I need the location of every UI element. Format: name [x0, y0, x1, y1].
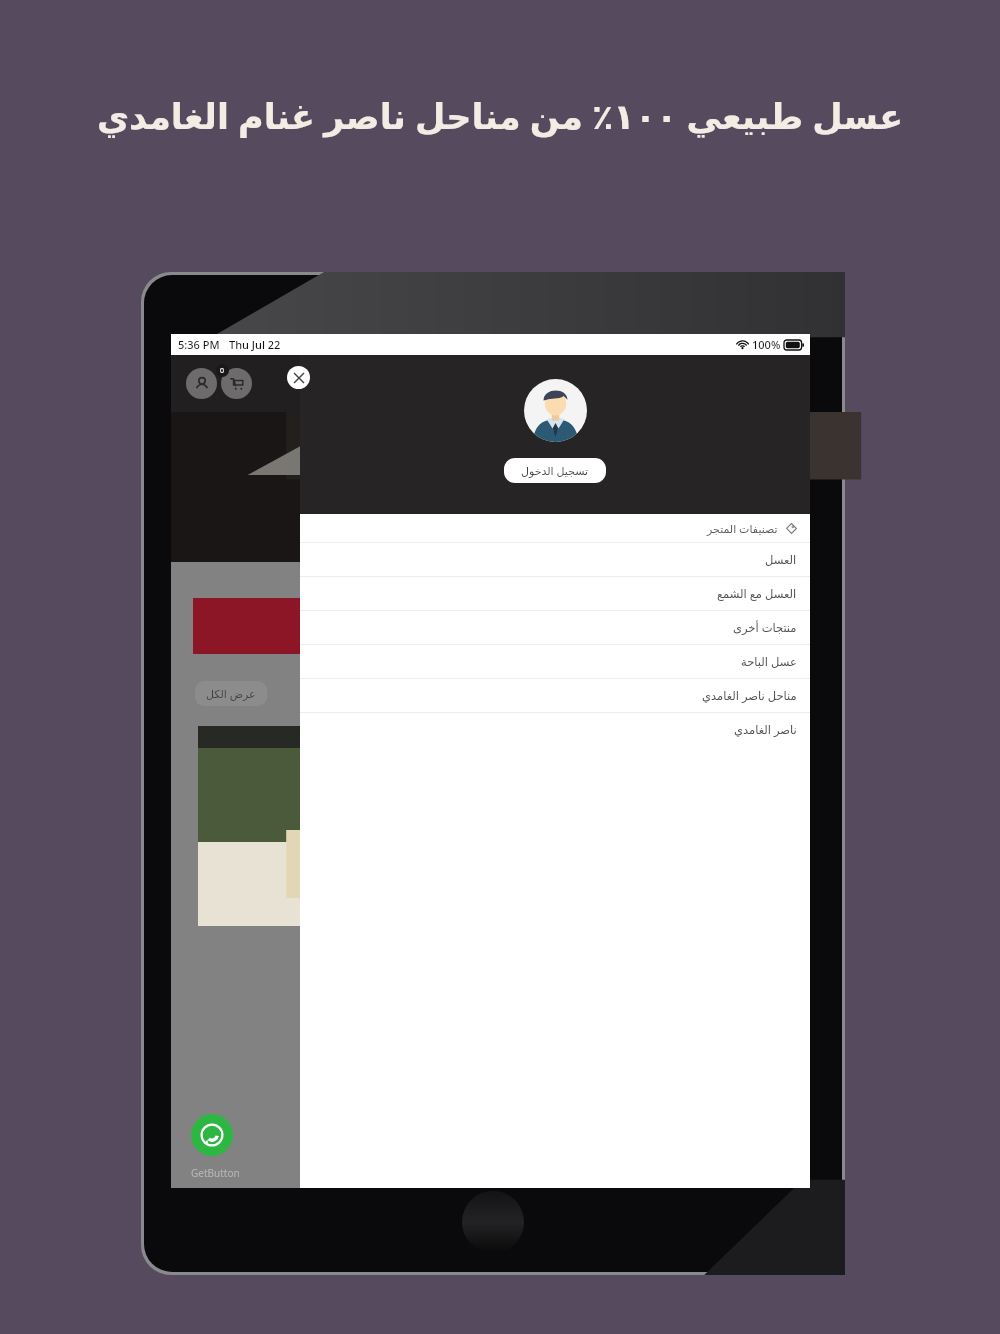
staticText: العسل	[765, 553, 797, 566]
staticText: تصنيفات المتجر	[707, 521, 778, 536]
button[interactable]: عرض الكل	[195, 681, 267, 706]
button[interactable]: Close	[287, 366, 310, 389]
button[interactable]: Account	[186, 368, 217, 399]
button[interactable]: ناصر الغامدي	[300, 713, 810, 746]
staticText: منتجات أخرى	[733, 620, 797, 636]
staticText: عسل الباحة	[741, 654, 797, 670]
staticText: 5:36 PM	[178, 337, 220, 352]
staticText: عسل طبيعي ١٠٠٪ من مناحل ناصر غنام الغامد…	[40, 92, 960, 140]
staticText: ناصر الغامدي	[734, 722, 797, 738]
staticText: 0	[220, 366, 225, 376]
button[interactable]: WhatsApp	[191, 1114, 233, 1156]
staticText: سل	[473, 510, 509, 536]
button[interactable]: تسجيل الدخول	[504, 458, 606, 483]
staticText: GetButton	[191, 1166, 240, 1180]
button[interactable]: مناحل ناصر الغامدي	[300, 679, 810, 712]
button[interactable]: Cart	[221, 368, 252, 399]
button[interactable]: منتجات أخرى	[300, 611, 810, 644]
staticText: مناحل ناصر الغامدي	[702, 688, 797, 704]
button[interactable]: عسل الباحة	[300, 645, 810, 678]
staticText: Thu Jul 22	[229, 337, 281, 352]
button[interactable]: العسل	[300, 543, 810, 576]
button[interactable]: العسل مع الشمع	[300, 577, 810, 610]
staticText: 100%	[752, 337, 781, 352]
staticText: العسل مع الشمع	[717, 586, 797, 602]
staticText: H2	[426, 598, 485, 654]
button[interactable]: Home	[462, 1191, 524, 1253]
button[interactable]: تصنيفات المتجر	[300, 514, 810, 542]
button[interactable]: الحجم نصف كيلو	[198, 726, 688, 926]
staticText: تسجيل الدخول	[521, 463, 589, 478]
staticText: عرض الكل	[206, 686, 256, 701]
